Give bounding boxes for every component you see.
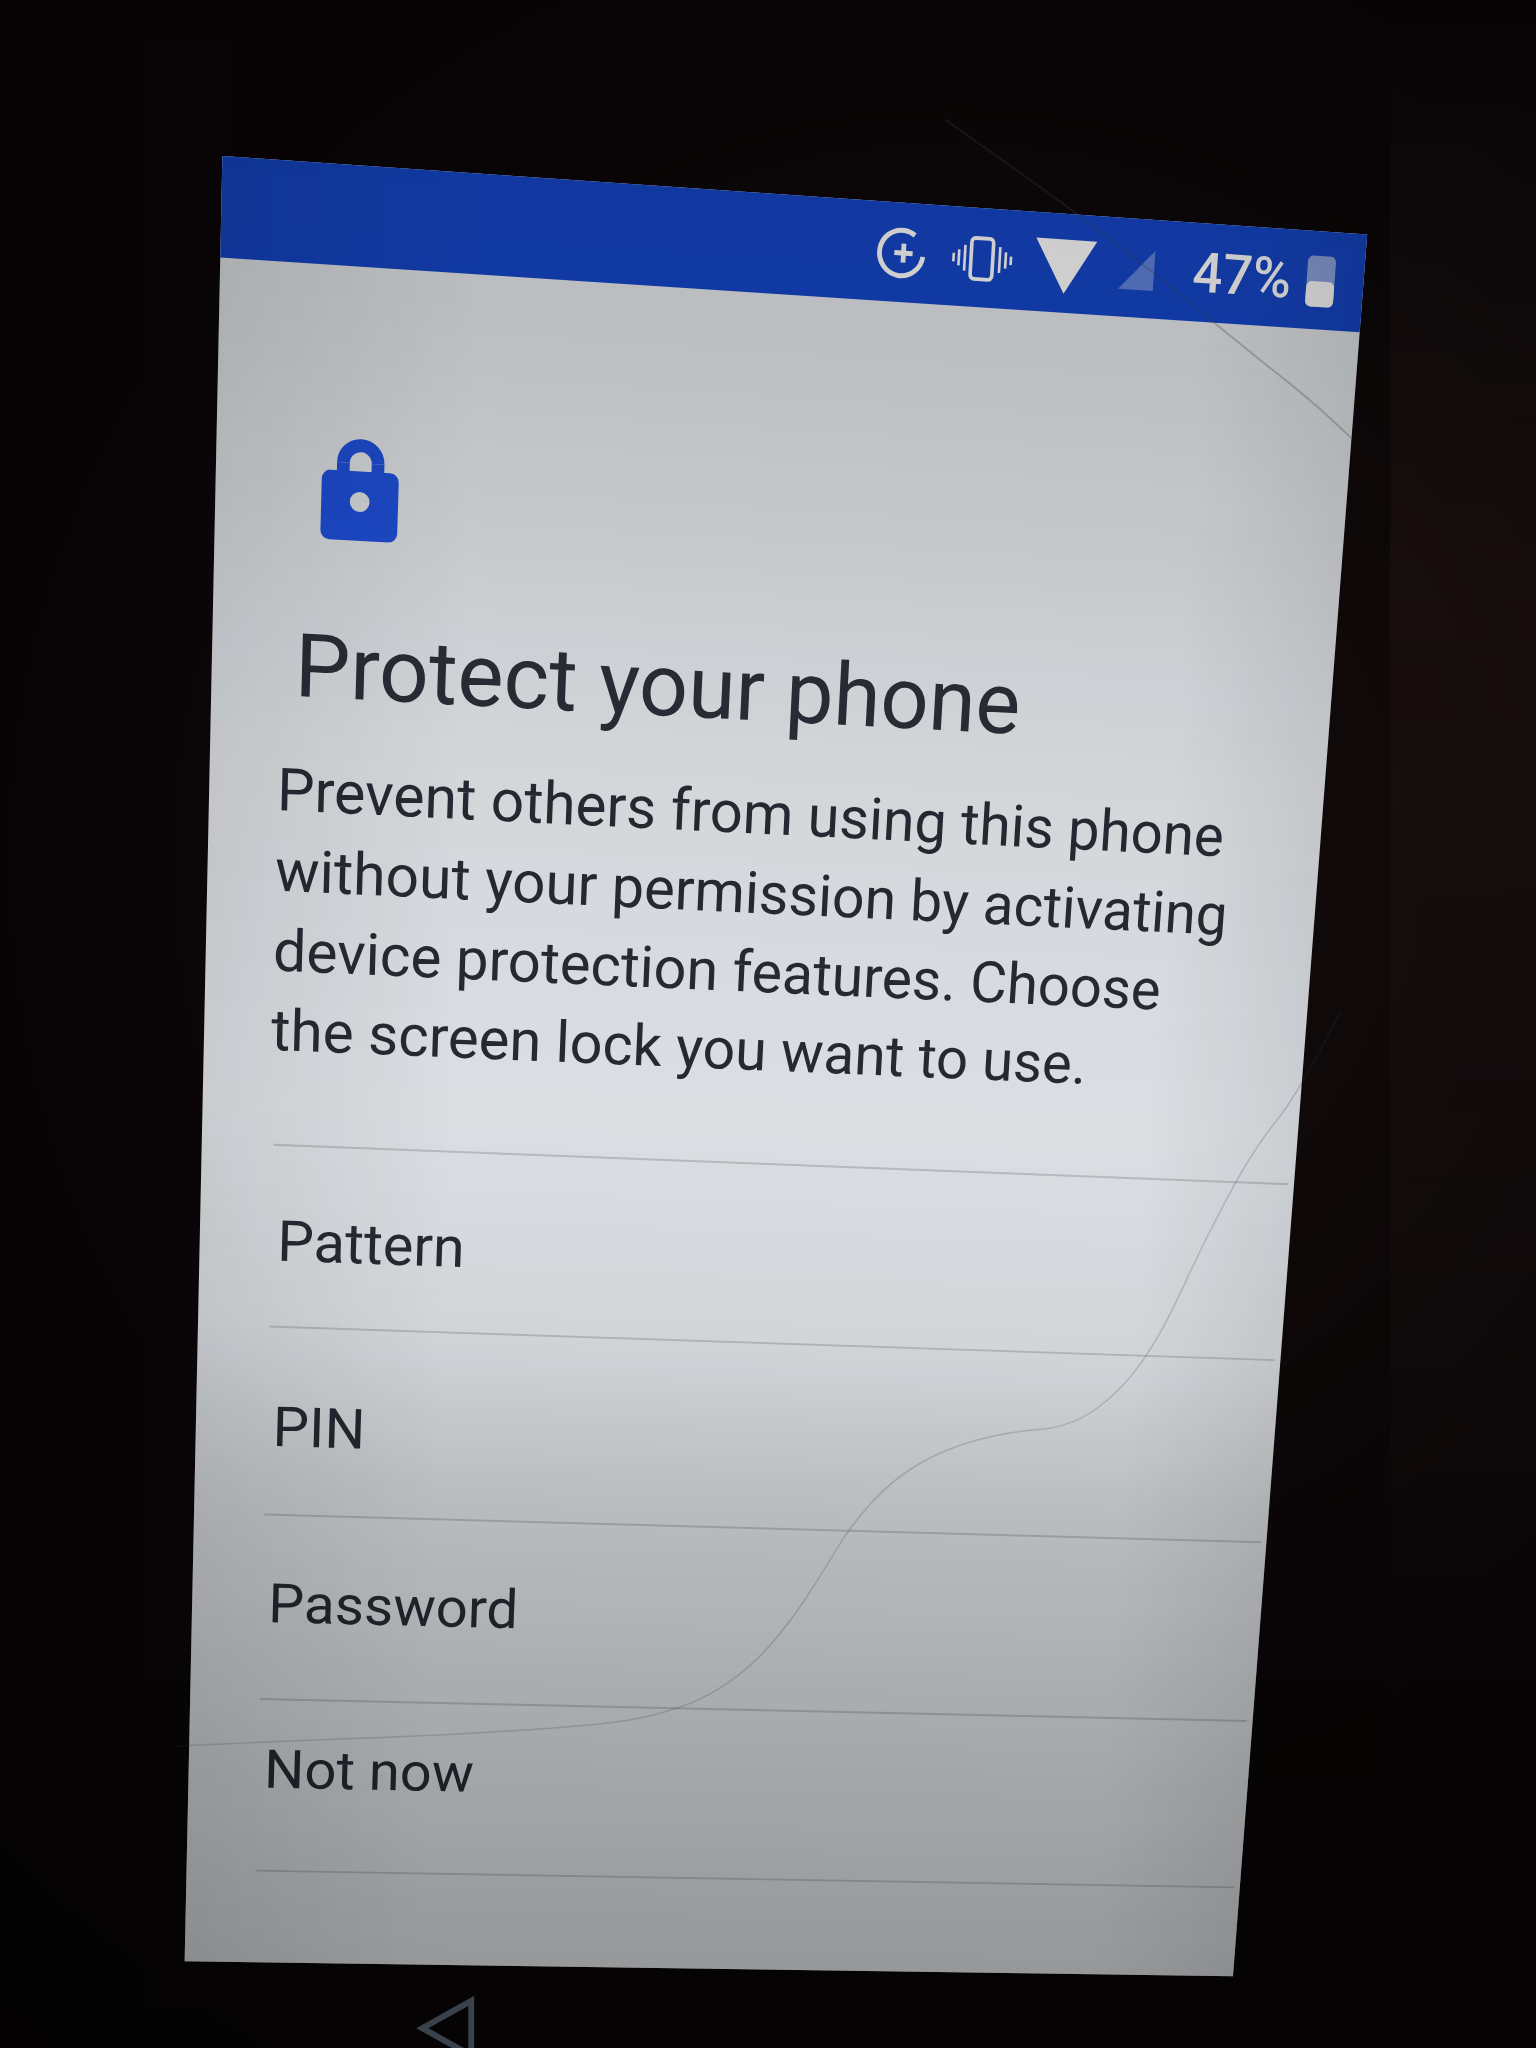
button[interactable]: Password [190,1512,1266,1720]
button[interactable]: Not now [187,1696,1253,1886]
staticText: PIN [272,1394,367,1462]
staticText: Password [267,1571,520,1641]
button[interactable]: PIN [194,1323,1280,1541]
staticText: Pattern [276,1208,466,1281]
staticText: 47% [1190,240,1294,312]
staticText: Protect your phone [294,614,1024,754]
staticText: Not now [263,1738,475,1805]
staticText: Prevent others from using this phone wit… [270,755,1235,1103]
button[interactable]: Back [412,1996,486,2048]
button[interactable]: Pattern [198,1141,1294,1359]
